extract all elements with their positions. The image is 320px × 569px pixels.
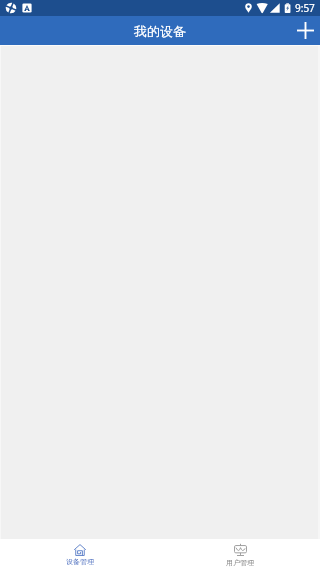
button[interactable]: 设备管理	[0, 539, 160, 569]
staticText: 用户管理	[226, 558, 254, 567]
button[interactable]: Add device	[291, 16, 320, 45]
button[interactable]: 用户管理	[160, 539, 320, 569]
staticText: 我的设备	[134, 23, 186, 39]
staticText: 设备管理	[66, 557, 94, 566]
staticText: 9:57	[295, 1, 315, 15]
